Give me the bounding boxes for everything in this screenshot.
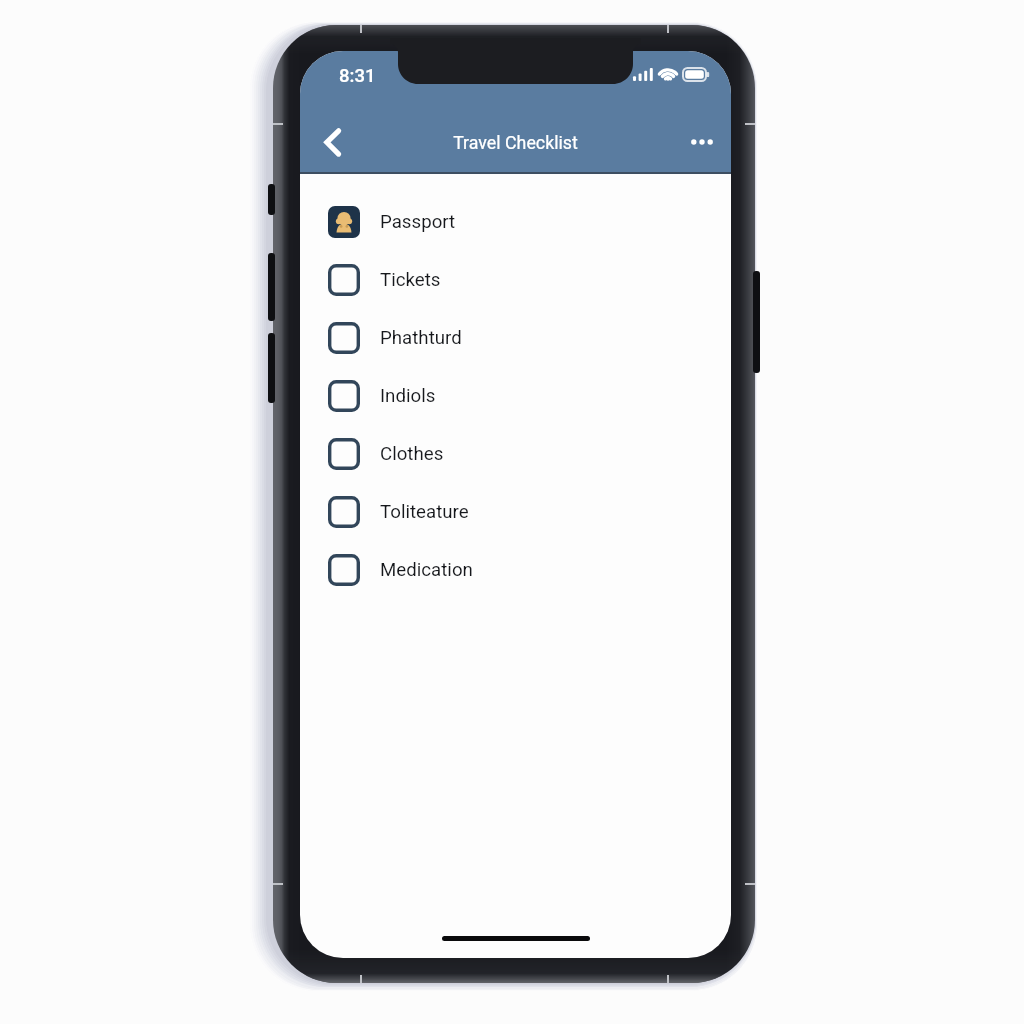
button[interactable]: Tickets (300, 251, 731, 309)
staticText: Phathturd (380, 327, 462, 349)
button[interactable]: Medication (300, 541, 731, 599)
staticText: Clothes (380, 443, 444, 465)
button[interactable]: Indiols (300, 367, 731, 425)
button[interactable]: Passport (300, 193, 731, 251)
staticText: Toliteature (380, 501, 469, 523)
staticText: Tickets (380, 269, 441, 291)
staticText: Indiols (380, 385, 436, 407)
staticText: Medication (380, 559, 473, 581)
button[interactable]: Clothes (300, 425, 731, 483)
staticText: Travel Checklist (300, 132, 731, 153)
staticText: Passport (380, 211, 456, 233)
button[interactable]: Back (309, 118, 357, 166)
staticText: 8:31 (339, 65, 376, 87)
button[interactable]: More options (678, 118, 726, 166)
button[interactable]: Phathturd (300, 309, 731, 367)
button[interactable]: Toliteature (300, 483, 731, 541)
